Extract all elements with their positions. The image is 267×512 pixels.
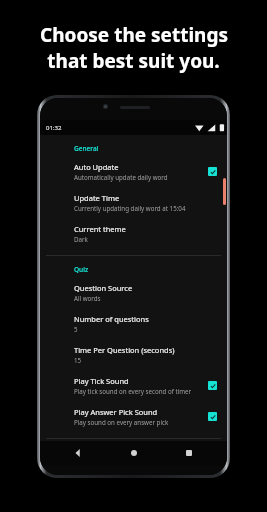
button[interactable]: Play Tick Sound xyxy=(40,370,227,401)
staticText: All words xyxy=(74,294,101,302)
button[interactable]: Toggle Auto Update xyxy=(208,167,217,176)
staticText: Time Per Question (seconds) xyxy=(74,345,175,355)
button[interactable]: Toggle Play Tick Sound xyxy=(208,381,217,390)
button[interactable]: Current theme xyxy=(40,218,227,249)
button[interactable]: Play Answer Pick Sound xyxy=(40,401,227,432)
staticText: Play sound on every answer pick xyxy=(74,418,169,426)
button[interactable]: Number of questions xyxy=(40,308,227,339)
button[interactable]: Time Per Question (seconds) xyxy=(40,339,227,370)
staticText: Play Answer Pick Sound xyxy=(74,407,158,417)
button[interactable]: Update Time xyxy=(40,187,227,218)
staticText: 01:32 xyxy=(46,124,62,132)
staticText: 5 xyxy=(74,325,78,333)
button[interactable]: Recents xyxy=(172,441,206,465)
staticText: Play Tick Sound xyxy=(74,376,129,386)
staticText: Question Source xyxy=(74,283,133,293)
staticText: Choose the settings xyxy=(40,22,228,48)
staticText: Current theme xyxy=(74,224,126,234)
button[interactable]: Home xyxy=(117,441,151,465)
button[interactable]: Question Source xyxy=(40,277,227,308)
button[interactable]: Back xyxy=(61,441,95,465)
staticText: Automatically update daily word xyxy=(74,173,168,181)
button[interactable]: Auto Update xyxy=(40,156,227,187)
staticText: that best suit you. xyxy=(47,48,220,74)
staticText: Quiz xyxy=(74,265,89,274)
staticText: Play tick sound on every second of timer xyxy=(74,387,192,395)
button[interactable]: Toggle Play Answer Pick Sound xyxy=(208,412,217,421)
staticText: Update Time xyxy=(74,193,120,203)
staticText: General xyxy=(74,144,99,153)
staticText: Auto Update xyxy=(74,162,119,172)
staticText: Number of questions xyxy=(74,314,149,324)
staticText: 15 xyxy=(74,356,82,364)
staticText: Currently updating daily word at 15:04 xyxy=(74,204,186,212)
staticText: Dark xyxy=(74,235,88,243)
